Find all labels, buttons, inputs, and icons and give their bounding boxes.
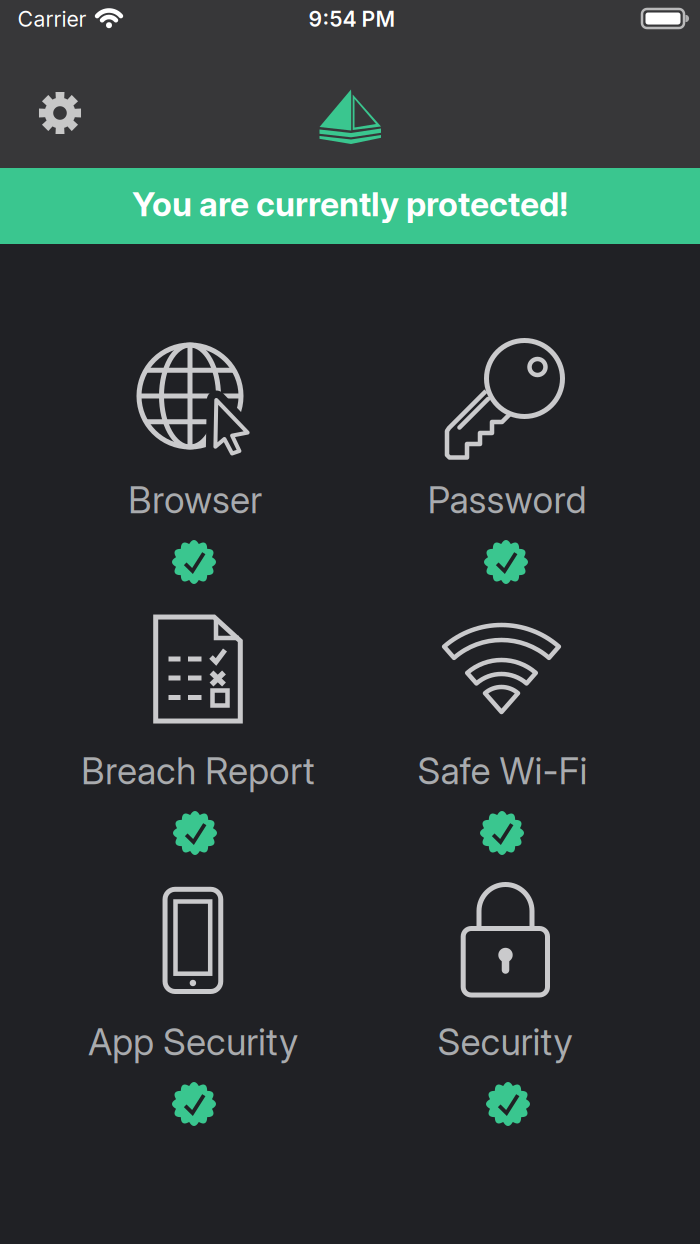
button[interactable]: Safe Wi-Fi <box>355 612 655 856</box>
staticText: Browser <box>128 478 262 522</box>
staticText: Breach Report <box>81 749 315 793</box>
button[interactable]: Password <box>355 341 655 585</box>
staticText: 9:54 PM <box>308 6 395 32</box>
staticText: Password <box>427 478 586 522</box>
staticText: Carrier <box>17 6 86 32</box>
button[interactable]: Breach Report <box>45 612 345 856</box>
staticText: You are currently protected! <box>132 184 568 224</box>
staticText: Safe Wi-Fi <box>417 749 587 793</box>
staticText: Security <box>437 1020 572 1064</box>
button[interactable]: Browser <box>45 341 345 585</box>
staticText: App Security <box>88 1020 298 1064</box>
button[interactable]: Settings <box>37 90 83 136</box>
button[interactable]: Security <box>355 883 655 1127</box>
button[interactable]: App Security <box>45 883 345 1127</box>
